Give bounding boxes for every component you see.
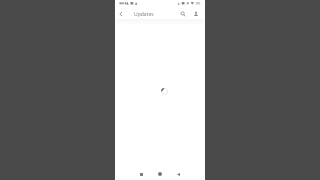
button[interactable]: Search <box>177 9 189 19</box>
button[interactable]: Navigate up <box>115 9 127 19</box>
button[interactable]: Back <box>172 168 184 180</box>
button[interactable]: Recent apps <box>135 168 147 180</box>
button[interactable]: Home <box>154 168 166 180</box>
staticText: Updates <box>134 11 154 18</box>
button[interactable]: Account <box>190 9 202 19</box>
